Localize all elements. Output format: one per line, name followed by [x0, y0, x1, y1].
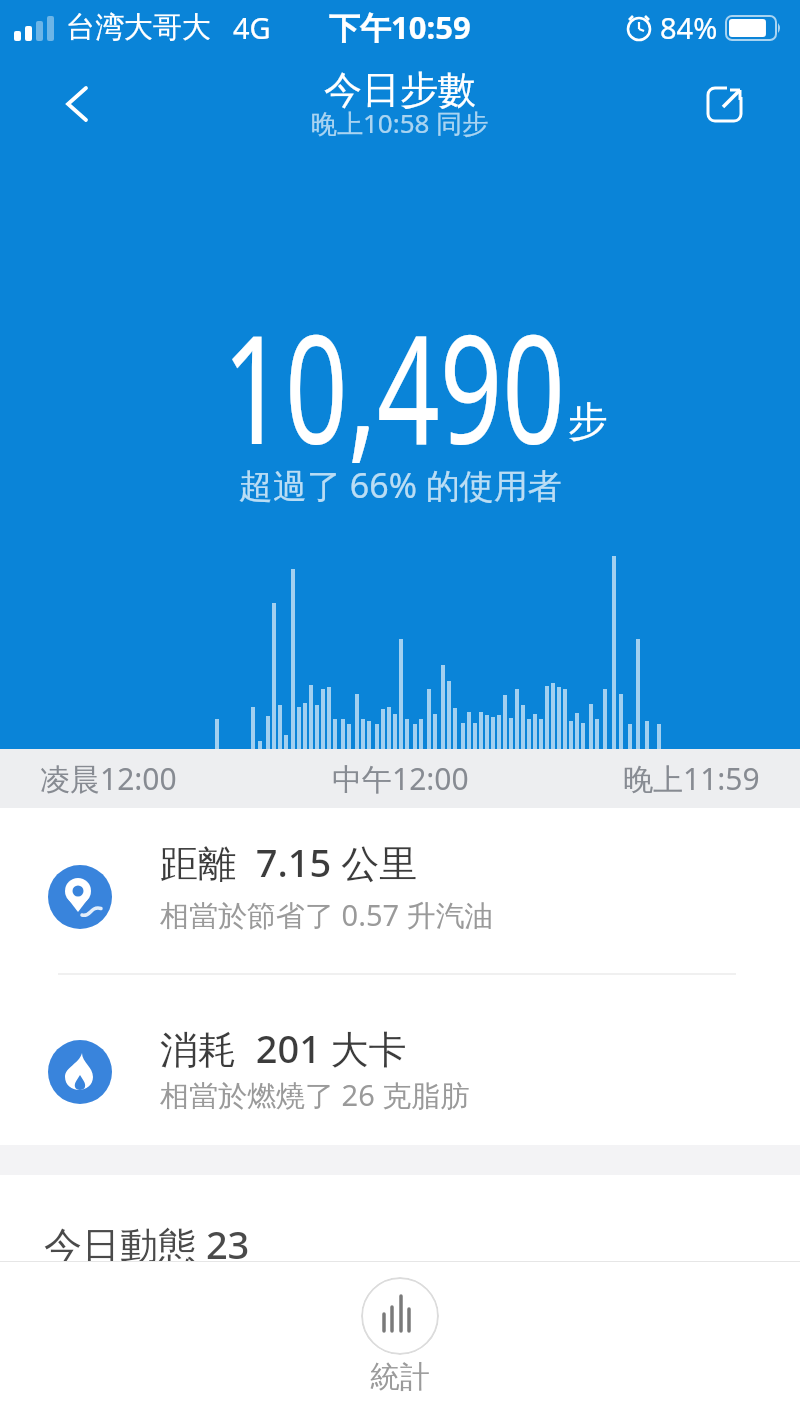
staticText: 今日步數: [324, 66, 476, 114]
staticText: 台湾大哥大: [66, 9, 211, 46]
staticText: 今日動態 23: [44, 1218, 250, 1270]
staticText: 中午12:00: [332, 758, 469, 799]
button[interactable]: [50, 80, 98, 128]
staticText: 晚上11:59: [623, 758, 760, 799]
staticText: 晚上10:58 同步: [311, 105, 489, 141]
button[interactable]: 距離 7.15 公里: [0, 808, 800, 973]
staticText: 凌晨12:00: [40, 758, 177, 799]
staticText: 10,490: [222, 284, 565, 488]
staticText: 超過了 66% 的使用者: [239, 462, 562, 508]
staticText: 距離 7.15 公里: [160, 836, 418, 888]
staticText: 84%: [660, 8, 718, 47]
staticText: 步: [568, 396, 608, 446]
staticText: 下午10:59: [329, 6, 471, 48]
staticText: 相當於節省了 0.57 升汽油: [160, 895, 494, 935]
staticText: 消耗 201 大卡: [160, 1022, 407, 1074]
staticText: 統計: [370, 1358, 430, 1396]
staticText: 4G: [233, 8, 271, 47]
button[interactable]: 統計: [345, 1271, 455, 1411]
button[interactable]: 消耗 201 大卡: [0, 975, 800, 1145]
staticText: 相當於燃燒了 26 克脂肪: [160, 1075, 470, 1115]
button[interactable]: [702, 80, 750, 128]
